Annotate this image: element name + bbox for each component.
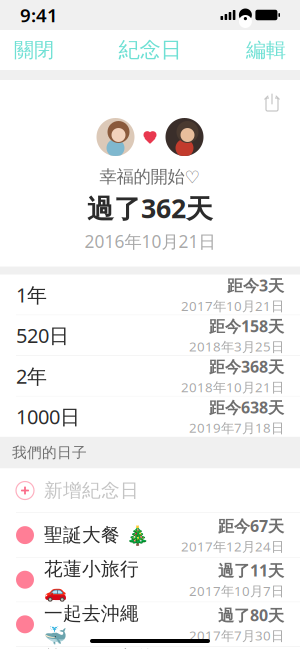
staticText: 花蓮小旅行 🚗 <box>44 558 139 602</box>
staticText: 距今3天 <box>227 275 284 296</box>
staticText: 1000日 <box>16 403 80 430</box>
staticText: 過了362天 <box>87 190 213 226</box>
staticText: 過了80天 <box>218 604 284 625</box>
staticText: 過了11天 <box>218 560 284 581</box>
button[interactable]: 聖誕大餐 🎄 <box>0 513 300 558</box>
button[interactable]: 520日 <box>0 315 300 356</box>
button[interactable]: Share <box>252 86 292 116</box>
staticText: 520日 <box>16 322 69 349</box>
staticText: 一起去沖繩 🐳 <box>44 602 139 646</box>
staticText: 距今158天 <box>209 315 284 336</box>
staticText: 2年 <box>16 363 47 389</box>
staticText: 2019年7月18日 <box>189 419 284 436</box>
button[interactable]: 1000日 <box>0 396 300 436</box>
staticText: 距今638天 <box>209 396 284 418</box>
staticText: 2017年12月24日 <box>181 537 284 555</box>
staticText: 關閉 <box>14 38 54 62</box>
staticText: 2017年7月30日 <box>189 627 284 644</box>
staticText: 距今67天 <box>218 515 284 536</box>
staticText: 2018年10月21日 <box>181 378 284 396</box>
staticText: 紀念日 <box>118 37 181 63</box>
staticText: 我們的日子 <box>12 443 87 461</box>
button[interactable]: 第一次一起泡溫泉 ♨️ <box>0 647 300 649</box>
staticText: 第一次一起泡溫泉 ♨️ <box>44 646 158 649</box>
staticText: 2017年10月21日 <box>181 297 284 315</box>
staticText: 2018年3月25日 <box>189 338 284 355</box>
button[interactable]: 關閉 <box>0 30 68 70</box>
staticText: 9:41 <box>20 3 58 27</box>
staticText: 距今368天 <box>209 356 284 377</box>
staticText: 編輯 <box>246 38 286 62</box>
button[interactable]: 新增紀念日 <box>0 468 300 513</box>
button[interactable]: 一起去沖繩 🐳 <box>0 602 300 647</box>
staticText: 新增紀念日 <box>44 479 139 502</box>
staticText: 2016年10月21日 <box>84 230 215 253</box>
button[interactable]: 編輯 <box>232 30 300 70</box>
staticText: 1年 <box>16 281 47 308</box>
staticText: 幸福的開始♡ <box>99 166 200 187</box>
button[interactable]: 2年 <box>0 356 300 396</box>
staticText: 聖誕大餐 🎄 <box>44 524 149 547</box>
staticText: 2017年10月7日 <box>189 582 284 600</box>
button[interactable]: 1年 <box>0 275 300 315</box>
button[interactable]: 花蓮小旅行 🚗 <box>0 558 300 602</box>
